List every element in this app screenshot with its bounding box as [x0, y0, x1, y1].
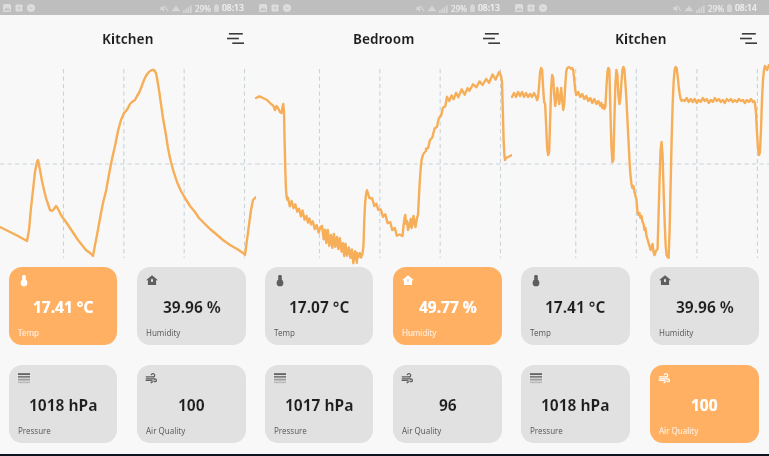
button[interactable]: Sort	[218, 21, 252, 55]
staticText: Humidity	[402, 327, 437, 338]
staticText: 39.96 %	[676, 296, 734, 317]
staticText: 96	[439, 394, 457, 415]
staticText: Temp	[18, 327, 39, 338]
staticText: Kitchen	[102, 30, 154, 48]
staticText: Pressure	[18, 425, 51, 436]
button[interactable]: 100	[650, 365, 759, 443]
button[interactable]: 100	[137, 365, 246, 443]
staticText: Temp	[530, 327, 551, 338]
staticText: 29%	[195, 3, 211, 14]
button[interactable]: 1018 hPa	[521, 365, 630, 443]
staticText: 08:13	[222, 2, 244, 14]
button[interactable]: Sort	[731, 21, 765, 55]
button[interactable]: 17.41 °C	[9, 267, 117, 345]
staticText: 39.96 %	[163, 296, 221, 317]
staticText: 08:13	[478, 2, 500, 14]
staticText: 17.07 °C	[289, 296, 350, 317]
staticText: Humidity	[146, 327, 181, 338]
staticText: 1018 hPa	[29, 394, 98, 415]
staticText: 100	[178, 394, 205, 415]
staticText: 29%	[451, 3, 467, 14]
button[interactable]: 1017 hPa	[265, 365, 373, 443]
staticText: 29%	[708, 3, 724, 14]
staticText: 49.77 %	[419, 296, 477, 317]
button[interactable]: 17.07 °C	[265, 267, 373, 345]
button[interactable]: 39.96 %	[137, 267, 246, 345]
button[interactable]: 1018 hPa	[9, 365, 117, 443]
button[interactable]: Sort	[474, 21, 508, 55]
staticText: 17.41 °C	[545, 296, 606, 317]
staticText: Air Quality	[659, 425, 699, 436]
staticText: Pressure	[274, 425, 307, 436]
staticText: Air Quality	[146, 425, 186, 436]
staticText: Air Quality	[402, 425, 442, 436]
staticText: 08:14	[735, 2, 757, 14]
staticText: Temp	[274, 327, 295, 338]
staticText: Bedroom	[353, 30, 415, 48]
button[interactable]: 96	[393, 365, 502, 443]
staticText: Humidity	[659, 327, 694, 338]
staticText: 100	[691, 394, 718, 415]
staticText: 1018 hPa	[541, 394, 610, 415]
staticText: 17.41 °C	[33, 296, 94, 317]
staticText: Kitchen	[615, 30, 667, 48]
button[interactable]: 17.41 °C	[521, 267, 630, 345]
button[interactable]: 49.77 %	[393, 267, 502, 345]
staticText: Pressure	[530, 425, 563, 436]
button[interactable]: 39.96 %	[650, 267, 759, 345]
staticText: 1017 hPa	[285, 394, 354, 415]
